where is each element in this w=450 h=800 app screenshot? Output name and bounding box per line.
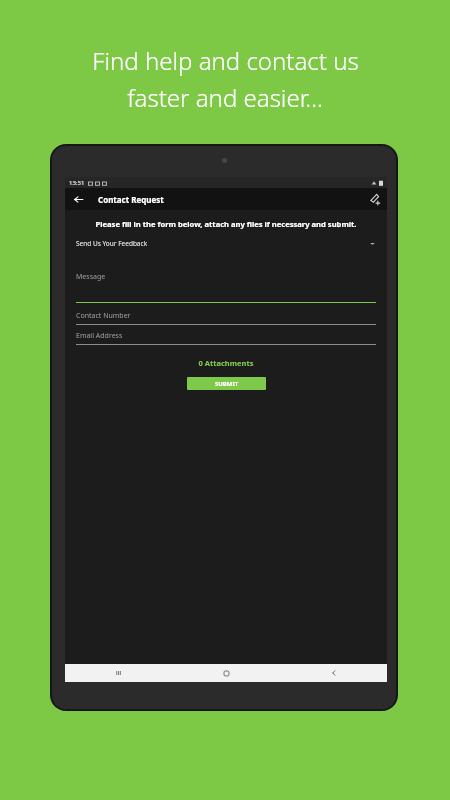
staticText: Send Us Your Feedback [76,239,148,248]
staticText: SUBMIT [215,380,239,388]
button[interactable]: Back [65,191,92,208]
button[interactable]: Message [76,272,376,303]
button[interactable]: Recents [65,664,173,682]
button[interactable]: SUBMIT [187,377,266,390]
staticText: faster and easier... [127,81,323,114]
button[interactable]: Contact Number [76,311,376,325]
staticText: Contact Number [76,311,131,321]
staticText: 0 Attachments [76,358,376,368]
button[interactable]: Email Address [76,331,376,345]
button[interactable]: Home [173,664,280,682]
button[interactable]: Send Us Your Feedback [76,237,376,250]
button[interactable]: Attach file [361,190,387,208]
staticText: Contact Request [98,194,164,205]
staticText: Email Address [76,331,123,341]
button[interactable]: Back [280,664,387,682]
staticText: Find help and contact us [92,44,359,77]
staticText: 13:51 [69,179,85,187]
staticText: Message [76,272,106,282]
staticText: Please fill in the form below, attach an… [76,219,376,229]
